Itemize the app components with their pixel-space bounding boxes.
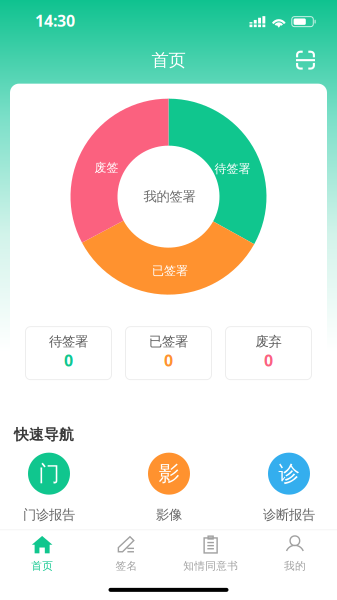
button[interactable]: Scan — [288, 43, 323, 78]
button[interactable]: 废弃 — [225, 327, 311, 380]
staticText: 诊 — [278, 460, 299, 487]
staticText: 已签署 — [149, 333, 188, 350]
staticText: 已签署 — [152, 263, 188, 278]
staticText: 诊断报告 — [263, 507, 315, 523]
staticText: 14:30 — [35, 10, 75, 31]
staticText: 影像 — [156, 507, 182, 523]
staticText: 首页 — [151, 49, 185, 71]
button[interactable]: 影 — [109, 453, 229, 523]
staticText: 我的 — [284, 559, 306, 572]
button[interactable]: 知情同意书 — [168, 530, 253, 578]
staticText: 门诊报告 — [23, 507, 75, 523]
staticText: 待签署 — [49, 333, 88, 350]
staticText: 知情同意书 — [183, 559, 238, 572]
button[interactable]: 已签署 — [125, 327, 211, 380]
staticText: 0 — [164, 350, 173, 371]
staticText: 0 — [64, 350, 73, 371]
staticText: 废签 — [94, 160, 118, 175]
staticText: 快速导航 — [14, 426, 74, 444]
staticText: 我的签署 — [143, 188, 195, 205]
staticText: 门 — [38, 460, 59, 487]
button[interactable]: 签名 — [84, 530, 168, 578]
button[interactable]: 诊 — [229, 453, 337, 523]
staticText: 废弃 — [255, 333, 281, 350]
staticText: 签名 — [115, 559, 137, 572]
button[interactable]: 门 — [0, 453, 109, 523]
staticText: 影 — [158, 460, 179, 487]
staticText: 0 — [264, 350, 273, 371]
button[interactable]: 首页 — [0, 530, 84, 578]
button[interactable]: 我的 — [253, 530, 337, 578]
staticText: 首页 — [31, 559, 53, 572]
staticText: 待签署 — [214, 161, 250, 176]
button[interactable]: 待签署 — [25, 327, 111, 380]
